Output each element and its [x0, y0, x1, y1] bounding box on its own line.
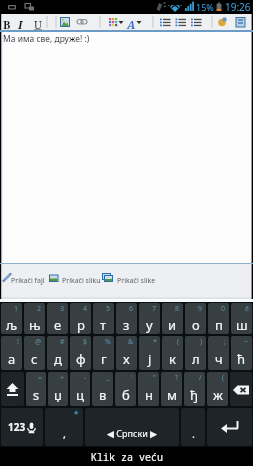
button[interactable]: 0 — [208, 303, 229, 334]
button[interactable]: % — [93, 336, 114, 370]
staticText: ) — [200, 337, 203, 347]
button[interactable]: Prikači sliku — [62, 276, 101, 286]
staticText: 7 — [152, 304, 157, 314]
staticText: 8 — [175, 304, 180, 314]
button[interactable]: # — [47, 336, 68, 370]
staticText: ' — [131, 373, 133, 383]
staticText: ч — [215, 350, 223, 368]
button[interactable]: - — [70, 372, 90, 406]
staticText: ★ — [73, 409, 80, 417]
staticText: х — [123, 350, 130, 368]
button[interactable]: Shift — [1, 372, 24, 406]
button[interactable]: ( — [162, 336, 183, 370]
staticText: ј — [148, 350, 152, 368]
staticText: м — [167, 386, 177, 404]
button[interactable]: . — [181, 408, 205, 446]
staticText: 3 — [60, 304, 65, 314]
staticText: Ма има све, друже! :) — [3, 33, 90, 45]
button[interactable]: ) — [185, 336, 206, 370]
staticText: - — [84, 373, 87, 383]
button[interactable]: 9 — [185, 303, 206, 334]
button[interactable]: A — [127, 17, 136, 32]
staticText: ~ — [244, 337, 249, 347]
staticText: 0 — [221, 304, 226, 314]
button[interactable]: Prikači slike — [117, 276, 156, 286]
staticText: 123 — [8, 420, 26, 434]
staticText: и — [168, 316, 177, 334]
button[interactable]: 4 — [70, 303, 91, 334]
button[interactable]: 5 — [93, 303, 114, 334]
button[interactable]: I — [18, 17, 23, 32]
staticText: ё — [245, 304, 249, 314]
staticText: ◀ Српски ▶ — [107, 427, 158, 439]
staticText: 6 — [129, 304, 134, 314]
button[interactable]: Prikači fajl — [11, 276, 45, 286]
staticText: _ — [106, 373, 110, 383]
button[interactable]: ◀ Српски ▶ — [85, 408, 179, 446]
staticText: ш — [236, 316, 248, 334]
staticText: г — [101, 350, 107, 368]
staticText: б — [122, 386, 130, 404]
staticText: о — [192, 316, 200, 334]
staticText: т — [100, 316, 107, 334]
button[interactable]: Symbols and voice input — [1, 408, 43, 446]
staticText: * — [153, 337, 157, 347]
button[interactable]: 8 — [162, 303, 183, 334]
button[interactable]: ! — [1, 336, 22, 370]
button[interactable]: @ — [24, 336, 45, 370]
staticText: 15% — [196, 1, 214, 13]
staticText: ц — [76, 386, 84, 404]
button[interactable]: * — [139, 336, 160, 370]
button[interactable]: U — [34, 17, 42, 32]
staticText: ђ — [190, 386, 199, 404]
staticText: ! — [17, 337, 19, 347]
staticText: љ — [6, 316, 18, 334]
button[interactable]: B — [3, 17, 11, 32]
button[interactable]: ★ — [45, 408, 83, 446]
button[interactable]: ; — [208, 336, 229, 370]
staticText: " — [153, 373, 156, 383]
button[interactable]: _ — [92, 372, 113, 406]
button[interactable]: Enter — [207, 408, 252, 446]
staticText: + — [60, 373, 65, 383]
staticText: , — [63, 426, 66, 441]
staticText: ; — [224, 337, 226, 347]
staticText: ћ — [237, 350, 246, 368]
staticText: п — [215, 316, 223, 334]
staticText: з — [123, 316, 130, 334]
staticText: л — [192, 350, 200, 368]
staticText: 5 — [106, 304, 111, 314]
staticText: . — [192, 426, 195, 441]
button[interactable]: 2 — [24, 303, 45, 334]
staticText: е — [54, 316, 62, 334]
button[interactable]: " — [138, 372, 159, 406]
staticText: Klik za veću — [91, 450, 163, 464]
staticText: = — [38, 373, 43, 383]
button[interactable]: = — [26, 372, 46, 406]
staticText: & — [128, 337, 134, 347]
staticText: @ — [35, 337, 42, 347]
staticText: с — [31, 350, 38, 368]
staticText: ѕ — [33, 386, 40, 404]
button[interactable]: / — [184, 372, 205, 406]
staticText: 2 — [37, 304, 42, 314]
staticText: $ — [83, 337, 88, 347]
staticText: д — [54, 350, 62, 368]
staticText: / — [199, 373, 202, 383]
button[interactable]: ( — [207, 372, 228, 406]
button[interactable]: ? — [161, 372, 182, 406]
button[interactable]: $ — [70, 336, 91, 370]
button[interactable]: 6 — [116, 303, 137, 334]
staticText: р — [77, 316, 85, 334]
button[interactable]: 1 — [1, 303, 22, 334]
button[interactable]: ~ — [231, 336, 252, 370]
staticText: а — [8, 350, 16, 368]
button[interactable]: Backspace — [230, 372, 252, 406]
button[interactable]: ё — [231, 303, 252, 334]
button[interactable]: + — [48, 372, 68, 406]
button[interactable]: ' — [115, 372, 136, 406]
button[interactable]: 3 — [47, 303, 68, 334]
button[interactable]: 7 — [139, 303, 160, 334]
button[interactable]: & — [116, 336, 137, 370]
staticText: н — [145, 386, 153, 404]
